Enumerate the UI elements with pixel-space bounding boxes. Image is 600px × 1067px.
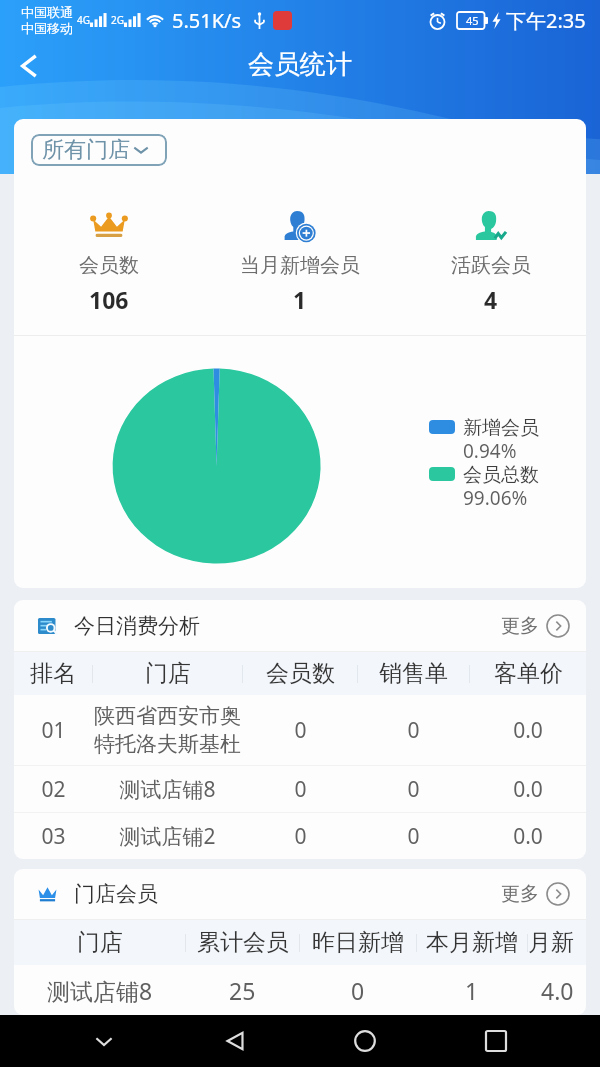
- button[interactable]: Recents: [470, 1015, 522, 1067]
- button[interactable]: 当月新增会员: [204, 210, 395, 315]
- staticText: 0.0: [513, 716, 543, 745]
- staticText: 昨日新增: [312, 928, 404, 957]
- button[interactable]: 所有门店: [31, 134, 167, 166]
- staticText: 会员数: [266, 659, 335, 688]
- staticText: 0: [351, 975, 365, 1006]
- staticText: 排名: [30, 659, 76, 688]
- staticText: 陕西省西安市奥 特托洛夫斯基杜: [94, 703, 241, 757]
- staticText: 中国联通: [21, 4, 73, 20]
- button[interactable]: Back: [6, 43, 52, 89]
- staticText: 4.0: [541, 975, 574, 1006]
- button[interactable]: 01: [14, 695, 586, 765]
- staticText: 25: [229, 975, 256, 1006]
- staticText: 下午2:35: [506, 7, 586, 34]
- button[interactable]: 活跃会员: [395, 210, 586, 315]
- staticText: 99.06%: [463, 485, 528, 510]
- staticText: 5.51K/s: [172, 7, 242, 34]
- button[interactable]: Hide keyboard: [78, 1015, 130, 1067]
- staticText: 当月新增会员: [240, 253, 360, 278]
- staticText: 1: [293, 284, 307, 315]
- staticText: 0: [407, 822, 420, 851]
- staticText: 会员总数: [463, 463, 539, 485]
- staticText: 测试店铺8: [47, 975, 153, 1006]
- staticText: 测试店铺2: [119, 822, 216, 851]
- button[interactable]: 03: [14, 813, 586, 859]
- staticText: 月新增: [528, 928, 586, 957]
- staticText: 4: [484, 284, 498, 315]
- button[interactable]: Back: [209, 1015, 261, 1067]
- staticText: 今日消费分析: [74, 613, 200, 639]
- button[interactable]: Home: [339, 1015, 391, 1067]
- staticText: 0.0: [513, 775, 543, 804]
- button[interactable]: 更多: [498, 611, 573, 641]
- staticText: 0: [294, 775, 307, 804]
- staticText: 2G: [111, 13, 124, 27]
- button[interactable]: 02: [14, 766, 586, 812]
- staticText: 累计会员: [197, 928, 289, 957]
- staticText: 更多: [501, 882, 539, 906]
- staticText: 01: [41, 716, 66, 745]
- staticText: 1: [465, 975, 479, 1006]
- staticText: 测试店铺8: [119, 775, 216, 804]
- staticText: 0: [294, 822, 307, 851]
- button[interactable]: 更多: [498, 879, 573, 909]
- staticText: 销售单: [379, 659, 448, 688]
- staticText: 0: [407, 716, 420, 745]
- staticText: 会员统计: [248, 48, 352, 81]
- staticText: 门店: [145, 659, 191, 688]
- button[interactable]: 会员数: [14, 210, 204, 315]
- staticText: 本月新增: [426, 928, 518, 957]
- staticText: 活跃会员: [451, 253, 531, 278]
- staticText: 02: [41, 775, 66, 804]
- staticText: 03: [41, 822, 66, 851]
- staticText: 0.94%: [463, 438, 517, 463]
- staticText: 中国移动: [21, 20, 73, 36]
- button[interactable]: 测试店铺8: [14, 965, 586, 1015]
- staticText: 所有门店: [42, 136, 130, 164]
- staticText: 更多: [501, 614, 539, 638]
- staticText: 新增会员: [463, 416, 539, 438]
- staticText: 0.0: [513, 822, 543, 851]
- staticText: 客单价: [494, 659, 563, 688]
- staticText: 106: [89, 284, 129, 315]
- staticText: 4G: [77, 13, 90, 27]
- staticText: 0: [294, 716, 307, 745]
- staticText: 门店会员: [74, 881, 158, 907]
- staticText: 0: [407, 775, 420, 804]
- staticText: 会员数: [79, 253, 139, 278]
- staticText: 45: [466, 13, 479, 28]
- staticText: 门店: [77, 928, 123, 957]
